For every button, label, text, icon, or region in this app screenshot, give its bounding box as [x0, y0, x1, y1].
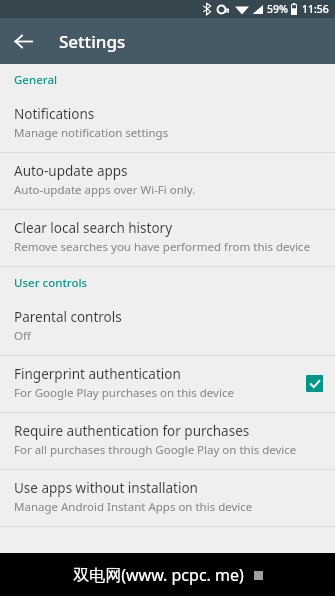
staticText: Off	[14, 328, 31, 344]
staticText: General	[14, 72, 58, 88]
staticText: Remove searches you have performed from …	[14, 239, 311, 255]
staticText: Manage notification settings	[14, 125, 169, 141]
button[interactable]: Require authentication for purchases	[0, 413, 335, 469]
button[interactable]: Notifications	[0, 96, 335, 152]
staticText: Clear local search history	[14, 219, 173, 237]
button[interactable]: Back	[0, 18, 46, 64]
button[interactable]: Use apps without installation	[0, 470, 335, 526]
staticText: 双电网(www. pcpc. me)	[73, 564, 244, 586]
staticText: Require authentication for purchases	[14, 422, 250, 440]
button[interactable]: Fingerprint authentication enabled	[306, 375, 323, 392]
staticText: For all purchases through Google Play on…	[14, 442, 297, 458]
staticText: Auto-update apps	[14, 162, 128, 180]
staticText: Settings	[59, 30, 126, 53]
staticText: User controls	[14, 275, 88, 291]
staticText: Fingerprint authentication	[14, 365, 181, 383]
staticText: Notifications	[14, 105, 95, 123]
button[interactable]: Clear local search history	[0, 210, 335, 266]
staticText: 11:56	[302, 2, 329, 16]
staticText: For Google Play purchases on this device	[14, 385, 234, 401]
staticText: Auto-update apps over Wi-Fi only.	[14, 182, 196, 198]
staticText: Manage Android Instant Apps on this devi…	[14, 499, 253, 515]
staticText: Parental controls	[14, 308, 122, 326]
staticText: Use apps without installation	[14, 479, 198, 497]
button[interactable]: Fingerprint authentication	[0, 356, 335, 412]
button[interactable]: Auto-update apps	[0, 153, 335, 209]
staticText: 59%	[267, 2, 288, 16]
button[interactable]: Parental controls	[0, 299, 335, 355]
